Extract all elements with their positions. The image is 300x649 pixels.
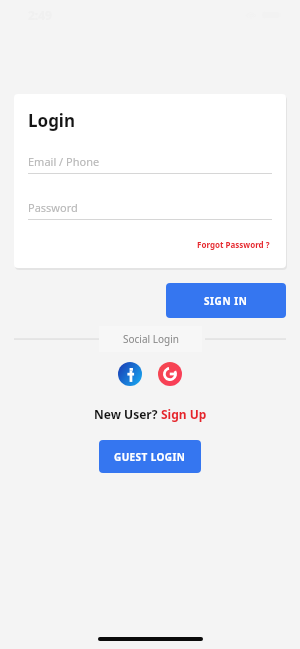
staticText: Login: [28, 109, 76, 132]
staticText: Sign Up: [161, 406, 207, 422]
button[interactable]: Sign in with Facebook: [118, 362, 142, 386]
staticText: Email / Phone: [28, 154, 100, 169]
button[interactable]: SIGN IN: [166, 283, 286, 318]
button[interactable]: Sign Up: [161, 406, 207, 422]
staticText: Password: [28, 200, 78, 215]
button[interactable]: Forgot Password ?: [195, 237, 272, 252]
button[interactable]: GUEST LOGIN: [99, 440, 201, 473]
staticText: SIGN IN: [204, 294, 248, 308]
button[interactable]: Sign in with Google: [158, 362, 182, 386]
staticText: New User?: [94, 406, 161, 422]
staticText: Forgot Password ?: [197, 239, 270, 250]
staticText: Social Login: [123, 332, 179, 346]
staticText: GUEST LOGIN: [114, 450, 186, 464]
